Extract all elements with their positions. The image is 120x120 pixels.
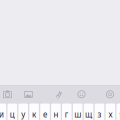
staticText: ц: [10, 109, 15, 120]
button[interactable]: у: [18, 103, 28, 120]
button[interactable]: з: [95, 103, 104, 120]
staticText: щ: [85, 109, 92, 120]
button[interactable]: н: [51, 103, 61, 120]
staticText: г: [65, 109, 69, 120]
button[interactable]: к: [29, 103, 39, 120]
button[interactable]: Attach file: [54, 90, 63, 98]
staticText: е: [43, 109, 47, 120]
button[interactable]: Photo library: [24, 90, 33, 98]
staticText: н: [53, 109, 58, 120]
button[interactable]: й: [0, 103, 6, 120]
button[interactable]: ц: [7, 103, 17, 120]
button[interactable]: щ: [84, 103, 93, 120]
staticText: к: [32, 109, 36, 120]
button[interactable]: ъ: [116, 103, 120, 120]
button[interactable]: More: [106, 90, 114, 98]
button[interactable]: Stickers: [77, 90, 86, 98]
staticText: у: [21, 109, 25, 120]
staticText: х: [108, 109, 112, 120]
staticText: ъ: [119, 109, 120, 120]
button[interactable]: Camera: [3, 90, 12, 98]
button[interactable]: ш: [73, 103, 82, 120]
button[interactable]: е: [40, 103, 50, 120]
staticText: й: [0, 109, 4, 120]
button[interactable]: г: [62, 103, 72, 120]
staticText: з: [97, 109, 101, 120]
button[interactable]: х: [106, 103, 115, 120]
staticText: ш: [74, 109, 81, 120]
